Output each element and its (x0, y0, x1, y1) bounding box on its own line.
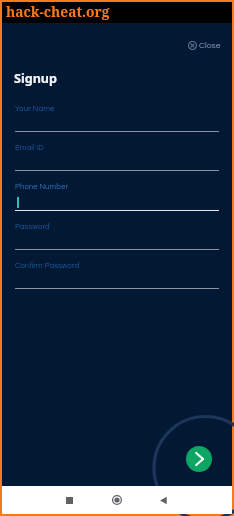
button[interactable]: Close (188, 41, 221, 50)
button[interactable]: Back (151, 488, 175, 512)
staticText: Signup (14, 70, 57, 87)
button[interactable]: Recents (57, 488, 81, 512)
button[interactable]: Home (105, 488, 129, 512)
button[interactable]: Email ID (15, 144, 219, 152)
staticText: hack-cheat.org (6, 2, 110, 21)
button[interactable]: Next (186, 446, 212, 472)
button[interactable]: Phone Number (15, 183, 219, 191)
button[interactable]: Your Name (15, 105, 219, 113)
button[interactable]: Password (15, 223, 219, 231)
button[interactable]: Confirm Password (15, 262, 219, 270)
staticText: Close (199, 41, 221, 50)
